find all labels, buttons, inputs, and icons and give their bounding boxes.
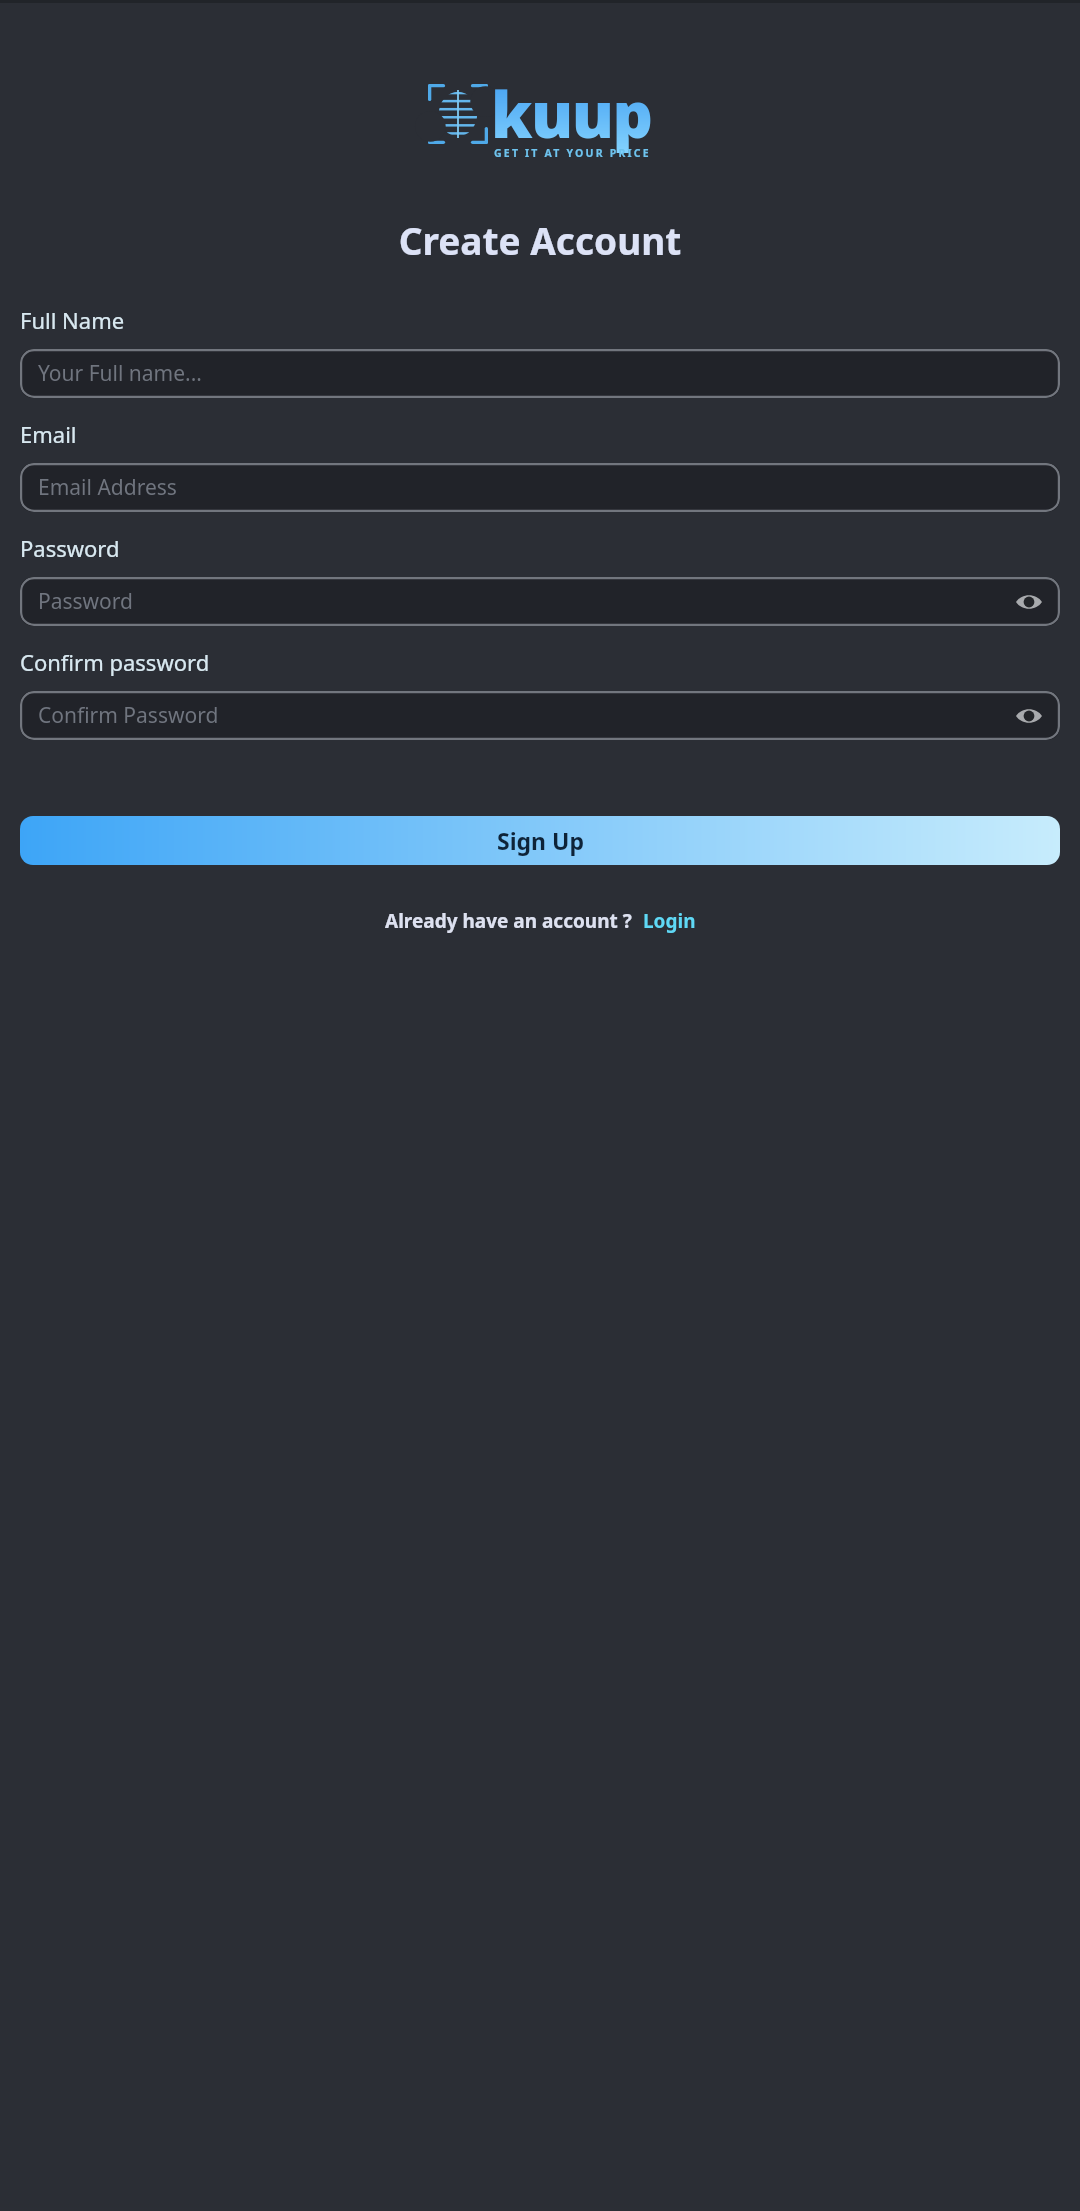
button[interactable]: Confirm Password: [20, 691, 1060, 740]
staticText: Email Address: [38, 473, 177, 502]
button[interactable]: Your Full name...: [20, 349, 1060, 398]
staticText: Login: [643, 908, 696, 934]
button[interactable]: Toggle password visibility: [1012, 585, 1046, 619]
staticText: Confirm Password: [38, 701, 219, 730]
staticText: Your Full name...: [38, 359, 202, 388]
staticText: Sign Up: [497, 825, 584, 856]
staticText: Password: [38, 587, 133, 616]
button[interactable]: Toggle password visibility: [1012, 699, 1046, 733]
staticText: Full Name: [20, 305, 125, 335]
staticText: Already have an account ?: [385, 908, 632, 934]
staticText: kuup: [491, 71, 652, 157]
staticText: Confirm password: [20, 647, 210, 677]
button[interactable]: Login: [643, 908, 696, 934]
button[interactable]: Password: [20, 577, 1060, 626]
staticText: Email: [20, 419, 77, 449]
staticText: Password: [20, 533, 120, 563]
button[interactable]: Email Address: [20, 463, 1060, 512]
staticText: Create Account: [0, 215, 1080, 265]
button[interactable]: Sign Up: [20, 816, 1060, 865]
staticText: GET IT AT YOUR PRICE: [494, 146, 651, 160]
